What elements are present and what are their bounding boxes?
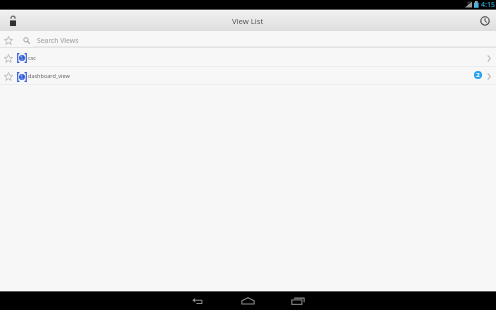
- button[interactable]: Back: [185, 291, 211, 310]
- button[interactable]: Favorite: [0, 67, 496, 84]
- staticText: csc: [28, 54, 36, 61]
- staticText: View List: [232, 16, 264, 26]
- staticText: Search Views: [37, 36, 79, 45]
- button[interactable]: Favorite: [0, 48, 496, 66]
- button[interactable]: Favorite: [0, 67, 16, 84]
- button[interactable]: Home: [235, 291, 261, 310]
- button[interactable]: Favorite: [0, 48, 16, 66]
- button[interactable]: Favorite: [0, 31, 16, 47]
- staticText: dashboard_view: [28, 72, 70, 79]
- button[interactable]: Locked: [0, 9, 26, 31]
- button[interactable]: History: [471, 9, 496, 31]
- staticText: 2: [476, 71, 480, 79]
- staticText: 4:15: [481, 0, 495, 9]
- button[interactable]: Recents: [285, 291, 311, 310]
